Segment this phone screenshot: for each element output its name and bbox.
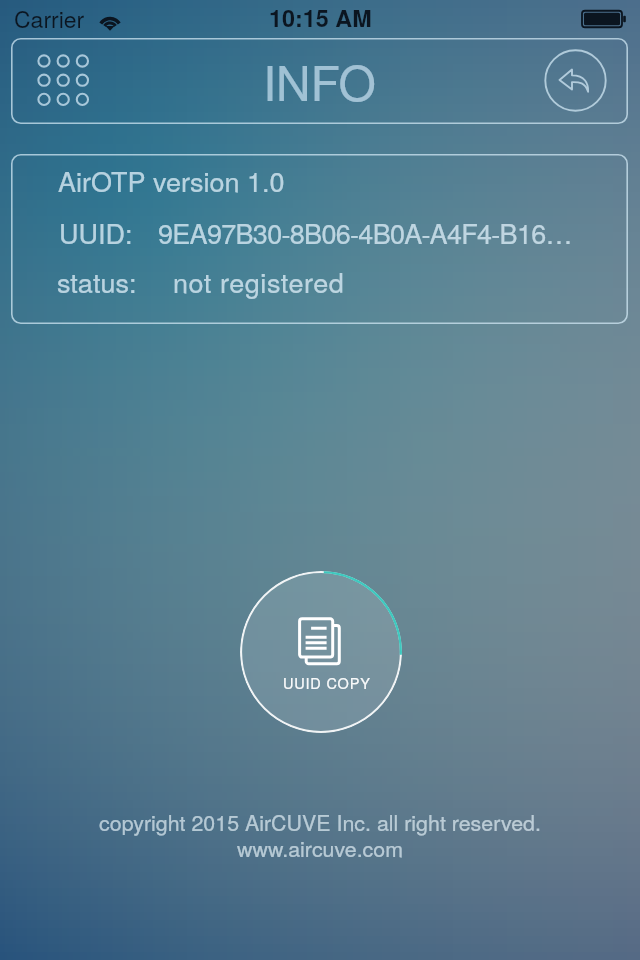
staticText: UUID COPY — [283, 672, 371, 693]
staticText: AirOTP version 1.0 — [58, 161, 285, 200]
staticText: UUID: — [59, 213, 133, 252]
button[interactable]: UUID COPY — [240, 571, 402, 733]
staticText: 10:15 AM — [269, 1, 372, 35]
staticText: status: — [57, 262, 137, 301]
staticText: INFO — [263, 46, 376, 115]
staticText: www.aircuve.com — [0, 832, 640, 863]
staticText: 9EA97B30-8B06-4B0A-A4F4-B16… — [158, 213, 572, 252]
staticText: not registered — [173, 262, 345, 301]
button[interactable]: Back — [541, 46, 610, 115]
staticText: copyright 2015 AirCUVE Inc. all right re… — [0, 806, 640, 837]
button[interactable]: Menu — [32, 49, 96, 113]
staticText: Carrier — [14, 2, 85, 35]
